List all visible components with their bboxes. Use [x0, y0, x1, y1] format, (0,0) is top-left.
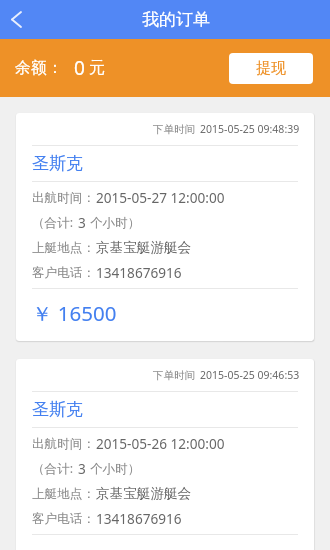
staticText: 3 — [78, 213, 86, 232]
staticText: （合计: — [32, 460, 74, 477]
staticText: 13418676916 — [96, 509, 182, 528]
staticText: 出航时间： — [32, 190, 95, 206]
staticText: 2015-05-25 09:48:39 — [200, 122, 300, 136]
button[interactable]: Back — [0, 0, 32, 39]
staticText: 个小时） — [90, 215, 141, 231]
button[interactable]: 提现 — [229, 53, 313, 84]
staticText: 下单时间 — [153, 369, 195, 382]
staticText: 元 — [89, 58, 105, 78]
staticText: 2015-05-25 09:46:53 — [200, 368, 300, 382]
staticText: 13418676916 — [96, 263, 182, 282]
staticText: 京基宝艇游艇会 — [96, 485, 192, 502]
button[interactable]: 下单时间 — [16, 113, 314, 341]
button[interactable]: 下单时间 — [16, 359, 314, 550]
staticText: 2015-05-26 12:00:00 — [96, 434, 225, 453]
staticText: 客户电话： — [32, 511, 95, 527]
staticText: 我的订单 — [142, 9, 210, 30]
staticText: 提现 — [256, 59, 286, 78]
staticText: （合计: — [32, 214, 74, 231]
staticText: 3 — [78, 459, 86, 478]
staticText: 京基宝艇游艇会 — [96, 239, 192, 256]
staticText: 出航时间： — [32, 436, 95, 452]
staticText: ￥ 16500 — [32, 299, 117, 327]
staticText: 上艇地点： — [32, 486, 95, 502]
staticText: 个小时） — [90, 461, 141, 477]
staticText: 圣斯克 — [32, 399, 83, 420]
staticText: 下单时间 — [153, 123, 195, 136]
staticText: 2015-05-27 12:00:00 — [96, 188, 225, 207]
staticText: 圣斯克 — [32, 153, 83, 174]
staticText: 余额： — [15, 58, 63, 78]
staticText: 上艇地点： — [32, 240, 95, 256]
staticText: 0 — [74, 55, 85, 81]
staticText: 客户电话： — [32, 265, 95, 281]
